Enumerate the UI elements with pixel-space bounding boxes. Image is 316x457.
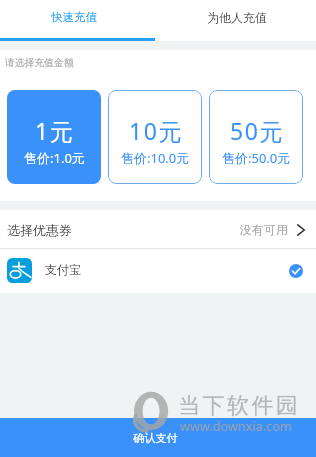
button[interactable]: 1元 — [7, 90, 101, 184]
other: 已选择 — [289, 264, 303, 278]
button[interactable]: 为他人充值 — [158, 0, 316, 41]
button[interactable]: 确认支付 — [0, 418, 316, 457]
staticText: 50元 — [230, 115, 285, 146]
other: 支付宝 — [7, 258, 32, 283]
staticText: 售价:50.0元 — [222, 149, 291, 167]
staticText: 当下软件园 — [177, 392, 299, 420]
staticText: 售价:1.0元 — [24, 149, 85, 167]
staticText: 为他人充值 — [207, 10, 267, 25]
button[interactable]: 选择优惠券 — [0, 210, 316, 248]
staticText: 快速充值 — [51, 10, 97, 24]
staticText: 请选择充值金额 — [5, 57, 74, 69]
staticText: 1元 — [35, 115, 75, 146]
staticText: www.downxia.com — [180, 417, 292, 434]
staticText: 售价:10.0元 — [121, 149, 190, 167]
staticText: 选择优惠券 — [7, 222, 72, 238]
button[interactable]: 支付宝 — [0, 249, 316, 293]
staticText: 确认支付 — [133, 431, 178, 445]
button[interactable]: 快速充值 — [0, 0, 158, 41]
staticText: 10元 — [129, 115, 184, 146]
button[interactable]: 50元 — [209, 90, 303, 184]
staticText: 支付宝 — [45, 262, 81, 277]
button[interactable]: 10元 — [108, 90, 202, 184]
staticText: 没有可用 — [240, 222, 288, 237]
